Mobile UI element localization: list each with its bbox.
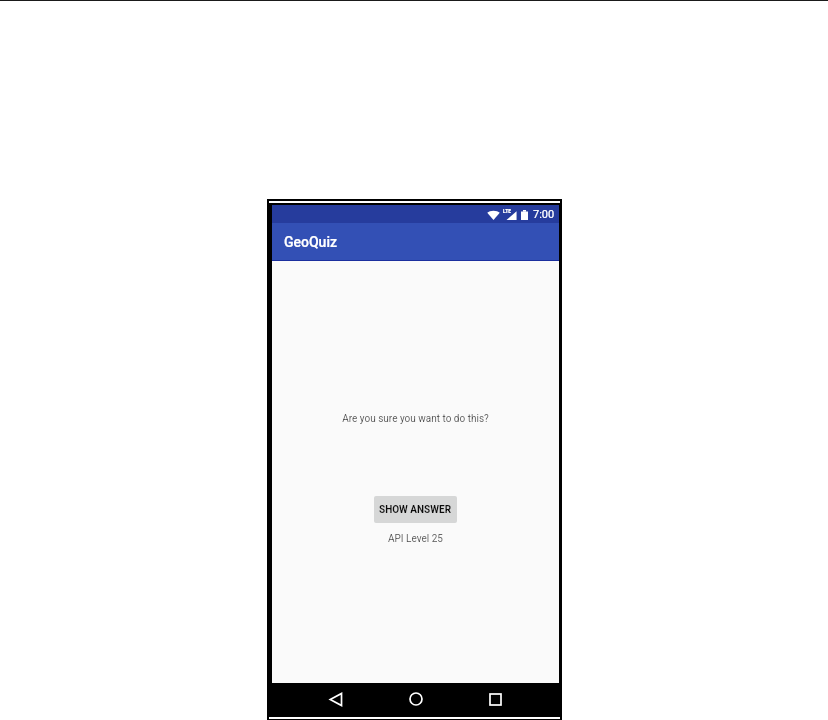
staticText: Are you sure you want to do this? [342, 413, 489, 425]
button[interactable]: Recents [480, 684, 510, 714]
staticText: LTE [503, 208, 512, 214]
button[interactable]: SHOW ANSWER [374, 496, 457, 523]
staticText: 7:00 [533, 208, 555, 221]
staticText: SHOW ANSWER [379, 504, 452, 516]
button[interactable]: GeoQuiz [272, 223, 559, 261]
staticText: API Level 25 [388, 533, 443, 545]
button[interactable]: Home [401, 684, 431, 714]
staticText: GeoQuiz [284, 234, 338, 250]
button[interactable]: Back [321, 684, 351, 714]
